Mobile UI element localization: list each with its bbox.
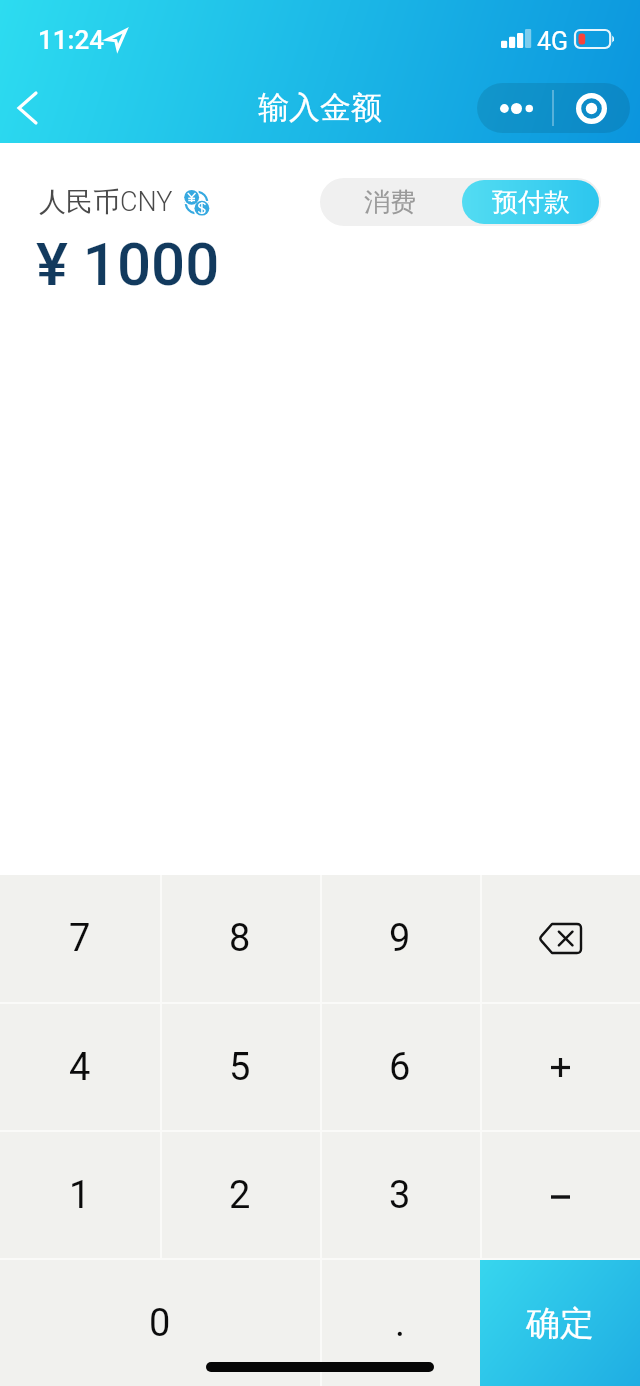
staticText: 9 xyxy=(389,916,411,961)
button[interactable]: 4 xyxy=(0,1004,160,1130)
staticText: 6 xyxy=(389,1045,411,1090)
button[interactable]: . xyxy=(320,1260,480,1386)
button[interactable]: 2 xyxy=(160,1132,320,1258)
staticText: 预付款 xyxy=(492,186,570,219)
staticText: 0 xyxy=(149,1301,171,1346)
staticText: 人民币CNY xyxy=(39,185,173,219)
staticText: 确定 xyxy=(526,1302,594,1345)
staticText: 8 xyxy=(229,916,251,961)
staticText: 1 xyxy=(69,1173,91,1218)
staticText: 消费 xyxy=(364,186,416,219)
staticText: 输入金额 xyxy=(258,88,382,127)
button[interactable]: Back xyxy=(0,72,64,143)
button[interactable]: More xyxy=(477,83,552,133)
button[interactable] xyxy=(480,1004,640,1130)
button[interactable]: 5 xyxy=(160,1004,320,1130)
button[interactable]: Close xyxy=(554,83,630,133)
staticText: 11:24 xyxy=(38,25,105,55)
button[interactable]: 9 xyxy=(320,875,480,1002)
button[interactable] xyxy=(480,875,640,1002)
staticText: 5 xyxy=(229,1045,251,1090)
button[interactable]: 7 xyxy=(0,875,160,1002)
button[interactable]: 确定 xyxy=(480,1260,640,1386)
staticText: ¥ 1000 xyxy=(36,229,220,299)
button[interactable]: 8 xyxy=(160,875,320,1002)
button[interactable]: 预付款 xyxy=(462,180,599,224)
button[interactable]: 1 xyxy=(0,1132,160,1258)
staticText: 4G xyxy=(537,27,569,56)
button[interactable]: 消费 xyxy=(320,178,460,226)
button[interactable]: 6 xyxy=(320,1004,480,1130)
button[interactable] xyxy=(480,1132,640,1258)
button[interactable]: 0 xyxy=(0,1260,320,1386)
staticText: 2 xyxy=(229,1173,251,1218)
staticText: 3 xyxy=(389,1173,411,1218)
button[interactable]: 3 xyxy=(320,1132,480,1258)
staticText: 7 xyxy=(69,916,91,961)
staticText: 4 xyxy=(69,1045,91,1090)
staticText: . xyxy=(395,1301,406,1346)
